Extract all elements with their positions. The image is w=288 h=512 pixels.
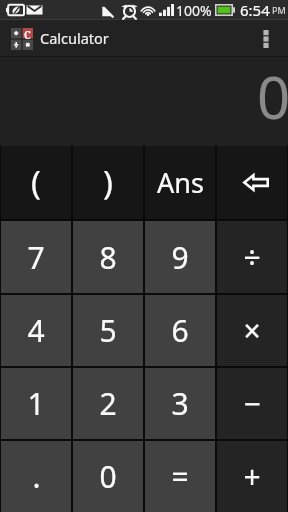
button[interactable]: 2: [73, 368, 143, 439]
button[interactable]: (: [1, 146, 71, 219]
button[interactable]: .: [1, 441, 71, 512]
button[interactable]: Ans: [145, 146, 215, 219]
staticText: ÷: [243, 237, 261, 278]
staticText: .: [32, 456, 41, 497]
staticText: 8: [99, 237, 117, 278]
button[interactable]: 0: [73, 441, 143, 512]
button[interactable]: Backspace: [217, 146, 287, 219]
staticText: 4: [27, 310, 45, 351]
button[interactable]: 9: [145, 221, 215, 293]
staticText: 6:54: [240, 0, 270, 20]
staticText: 6: [171, 310, 189, 351]
button[interactable]: +: [217, 441, 287, 512]
staticText: Calculator: [40, 28, 109, 48]
button[interactable]: 6: [145, 295, 215, 366]
button[interactable]: ÷: [217, 221, 287, 293]
staticText: 100%: [176, 1, 212, 20]
staticText: =: [171, 456, 189, 497]
staticText: C: [24, 28, 31, 39]
button[interactable]: 8: [73, 221, 143, 293]
staticText: 3: [171, 383, 189, 424]
staticText: 0: [257, 57, 288, 136]
staticText: 2: [99, 383, 117, 424]
staticText: 5: [99, 310, 117, 351]
staticText: Ans: [157, 164, 204, 201]
staticText: (: [31, 160, 41, 205]
button[interactable]: 1: [1, 368, 71, 439]
staticText: ): [103, 160, 113, 205]
staticText: −: [243, 383, 261, 424]
button[interactable]: ×: [217, 295, 287, 366]
button[interactable]: More options: [244, 20, 288, 57]
staticText: 7: [27, 237, 45, 278]
button[interactable]: =: [145, 441, 215, 512]
button[interactable]: 7: [1, 221, 71, 293]
button[interactable]: 3: [145, 368, 215, 439]
button[interactable]: −: [217, 368, 287, 439]
staticText: PM: [272, 4, 286, 16]
staticText: 1: [27, 383, 45, 424]
staticText: +: [243, 456, 261, 497]
button[interactable]: ): [73, 146, 143, 219]
button[interactable]: 4: [1, 295, 71, 366]
button[interactable]: 5: [73, 295, 143, 366]
staticText: 0: [99, 456, 117, 497]
staticText: 9: [171, 237, 189, 278]
staticText: ×: [243, 310, 261, 351]
